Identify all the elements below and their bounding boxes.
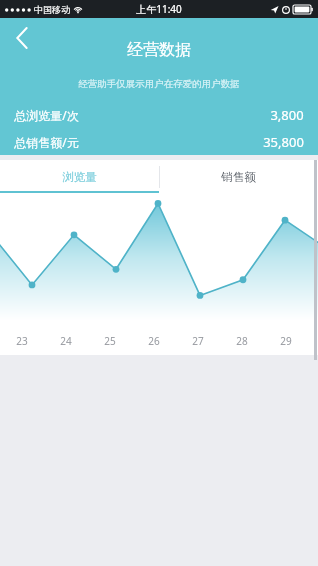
- staticText: 销售额: [221, 170, 256, 184]
- staticText: 总浏览量/次: [14, 107, 79, 123]
- staticText: 23: [16, 334, 28, 348]
- staticText: 27: [192, 334, 204, 348]
- staticText: 28: [236, 334, 248, 348]
- button[interactable]: Back: [0, 18, 44, 58]
- staticText: 经营助手仅展示用户在存爱的用户数据: [78, 78, 240, 90]
- staticText: 经营数据: [127, 40, 191, 60]
- staticText: 3,800: [270, 106, 304, 124]
- staticText: 26: [148, 334, 160, 348]
- staticText: 29: [280, 334, 292, 348]
- staticText: 浏览量: [62, 170, 97, 184]
- staticText: 中国移动: [34, 4, 70, 15]
- button[interactable]: 销售额: [159, 160, 318, 193]
- button[interactable]: 浏览量: [0, 160, 159, 193]
- staticText: 24: [60, 334, 72, 348]
- staticText: 上午11:40: [136, 2, 182, 16]
- staticText: 25: [104, 334, 116, 348]
- staticText: 35,800: [263, 133, 304, 151]
- staticText: 总销售额/元: [14, 134, 79, 150]
